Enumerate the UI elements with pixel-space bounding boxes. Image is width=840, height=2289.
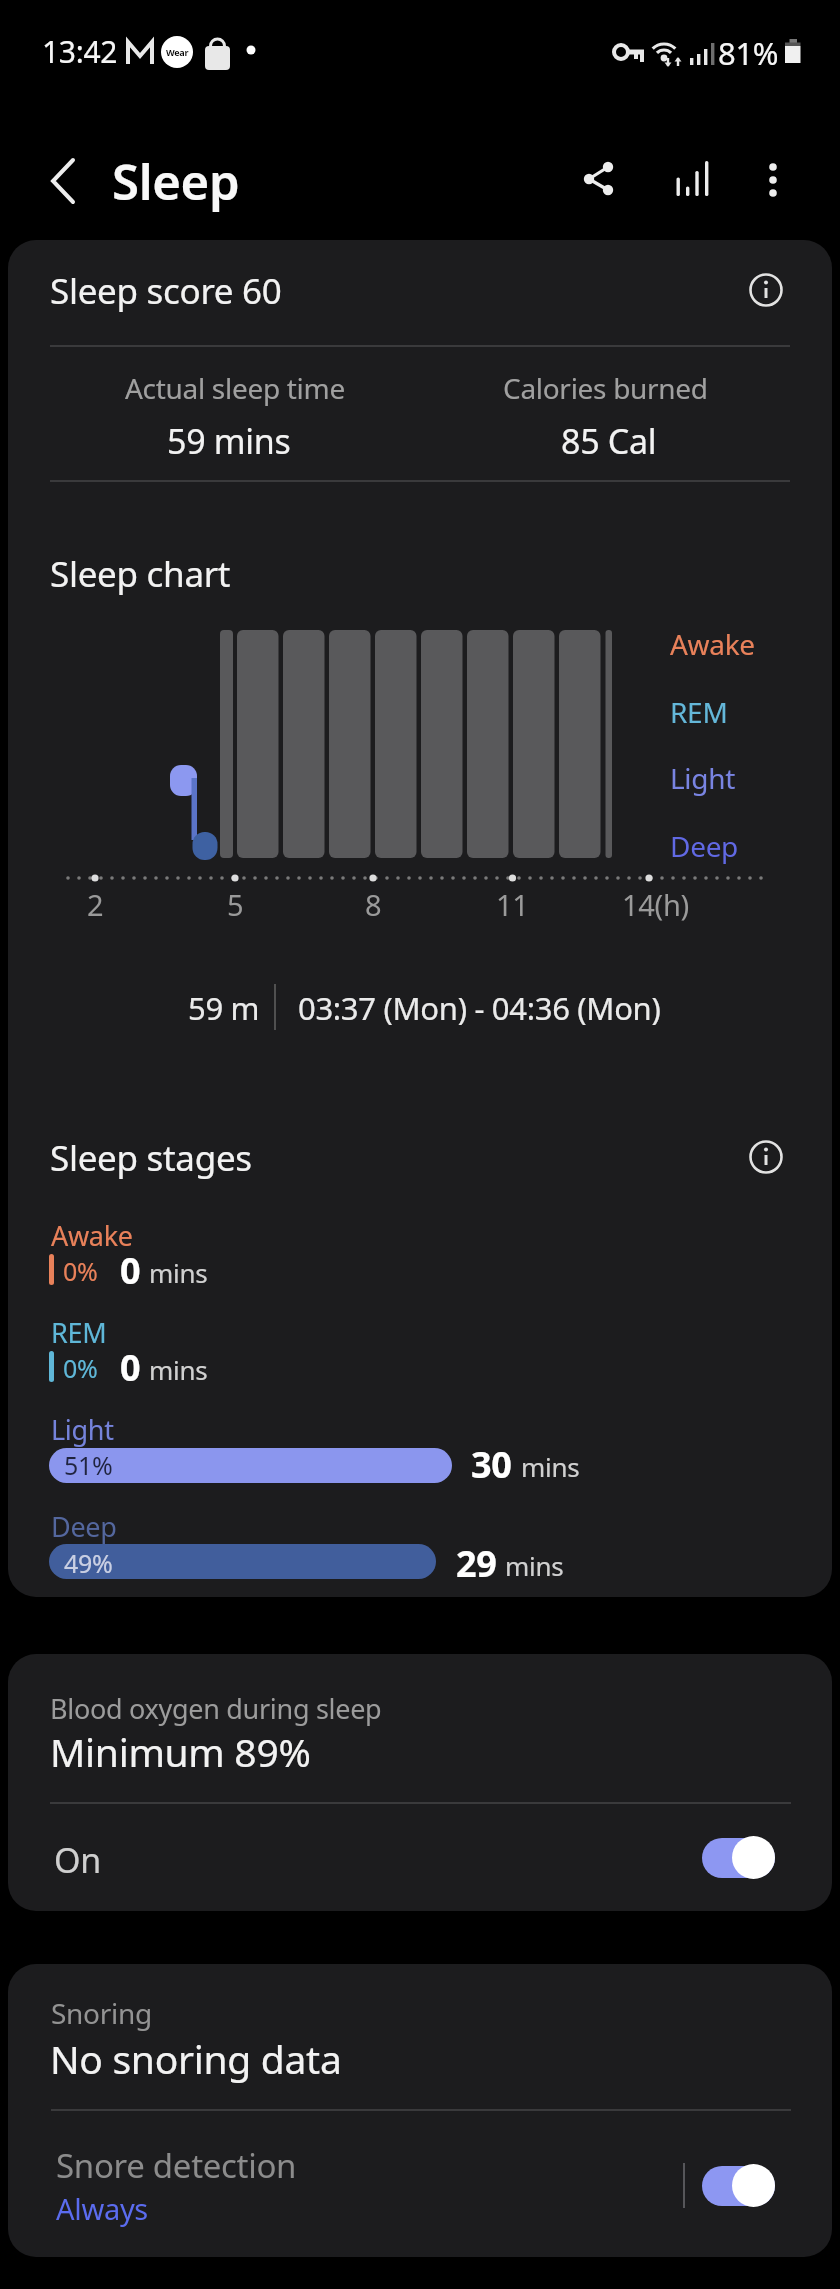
button[interactable]: [664, 151, 720, 207]
button[interactable]: [26, 151, 86, 211]
staticText: Always: [56, 2189, 148, 2228]
button[interactable]: [745, 152, 801, 208]
staticText: 0%: [63, 1351, 98, 1385]
staticText: Deep: [670, 827, 739, 865]
staticText: 59 m: [188, 987, 260, 1029]
staticText: Snore detection: [56, 2143, 297, 2188]
staticText: Deep: [51, 1508, 117, 1545]
button[interactable]: [742, 1133, 790, 1181]
button[interactable]: [702, 2163, 778, 2209]
staticText: mins: [149, 1352, 208, 1387]
button[interactable]: On: [8, 1814, 832, 1904]
staticText: Sleep chart: [50, 550, 231, 598]
staticText: 51%: [64, 1448, 113, 1482]
staticText: 59 mins: [167, 418, 291, 464]
staticText: Snoring: [51, 1994, 152, 2032]
staticText: Blood oxygen during sleep: [50, 1690, 382, 1727]
button[interactable]: Snore detection: [8, 2124, 832, 2244]
staticText: Wear: [166, 46, 189, 58]
staticText: Light: [670, 759, 736, 797]
staticText: 13:42: [42, 31, 118, 72]
staticText: Light: [51, 1411, 114, 1448]
staticText: 81%: [718, 32, 779, 74]
staticText: 0: [120, 1343, 141, 1392]
staticText: Calories burned: [503, 369, 708, 407]
staticText: Awake: [670, 625, 755, 663]
staticText: 0%: [63, 1254, 98, 1288]
staticText: 03:37 (Mon) - 04:36 (Mon): [298, 987, 661, 1029]
staticText: 14(h): [622, 885, 689, 924]
staticText: 29: [456, 1539, 497, 1588]
staticText: 0: [120, 1246, 141, 1295]
staticText: Actual sleep time: [125, 369, 345, 407]
staticText: No snoring data: [50, 2032, 342, 2085]
staticText: On: [54, 1837, 101, 1883]
staticText: Minimum 89%: [50, 1725, 311, 1778]
button[interactable]: [570, 151, 626, 207]
staticText: 5: [227, 885, 244, 924]
staticText: Sleep stages: [50, 1134, 252, 1182]
button[interactable]: [702, 1835, 778, 1881]
staticText: 49%: [64, 1546, 113, 1580]
staticText: mins: [505, 1548, 564, 1583]
staticText: REM: [670, 693, 728, 731]
staticText: 85 Cal: [561, 418, 657, 464]
staticText: mins: [521, 1449, 580, 1484]
staticText: REM: [51, 1314, 107, 1351]
staticText: 2: [87, 885, 104, 924]
staticText: Awake: [51, 1217, 133, 1254]
staticText: 8: [365, 885, 382, 924]
staticText: 30: [471, 1440, 512, 1489]
staticText: Sleep score 60: [50, 267, 282, 315]
button[interactable]: [742, 266, 790, 314]
staticText: 11: [496, 885, 529, 924]
staticText: Sleep: [112, 148, 240, 215]
staticText: mins: [149, 1255, 208, 1290]
